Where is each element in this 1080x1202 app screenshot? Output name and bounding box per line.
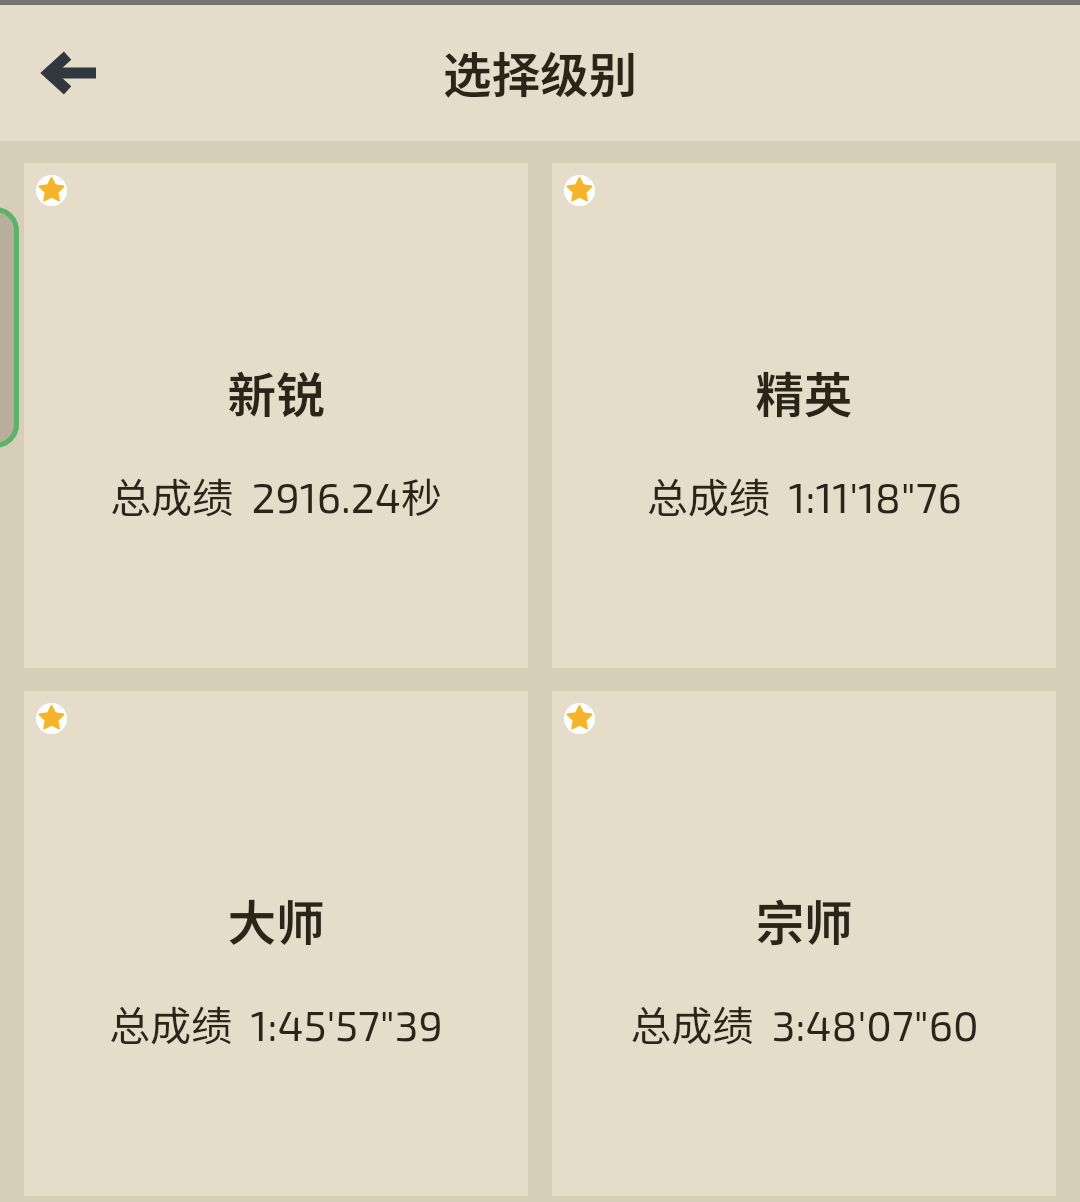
staticText: 总成绩 1:11'18"76 (647, 465, 962, 524)
staticText: 总成绩 3:48'07"60 (630, 993, 979, 1052)
button[interactable]: 新锐 (24, 163, 528, 668)
staticText: 宗师 (755, 885, 853, 955)
staticText: 精英 (755, 357, 853, 427)
staticText: 新锐 (227, 357, 325, 427)
button[interactable]: 宗师 (552, 691, 1056, 1196)
staticText: 大师 (227, 885, 325, 955)
staticText: 总成绩 1:45'57"39 (109, 993, 443, 1052)
button[interactable]: Back (14, 19, 122, 127)
button[interactable]: 精英 (552, 163, 1056, 668)
staticText: 总成绩 2916.24秒 (110, 465, 442, 524)
button[interactable]: 大师 (24, 691, 528, 1196)
staticText: 选择级别 (443, 37, 638, 107)
